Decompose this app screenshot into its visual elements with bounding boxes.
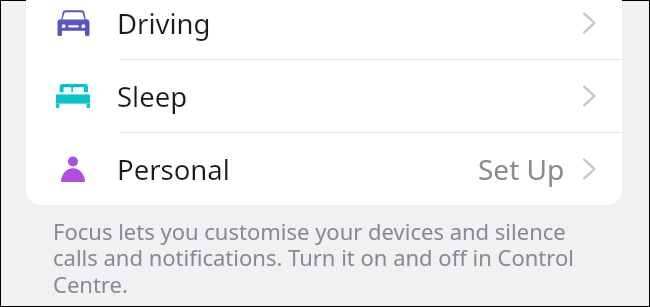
- staticText: Driving: [117, 5, 211, 42]
- button[interactable]: Personal: [26, 133, 622, 205]
- staticText: Focus lets you customise your devices an…: [53, 216, 598, 299]
- button[interactable]: Sleep: [26, 60, 622, 132]
- staticText: Set Up: [478, 150, 565, 188]
- staticText: Sleep: [117, 78, 188, 115]
- button[interactable]: Driving: [26, 0, 622, 59]
- staticText: Personal: [117, 151, 230, 188]
